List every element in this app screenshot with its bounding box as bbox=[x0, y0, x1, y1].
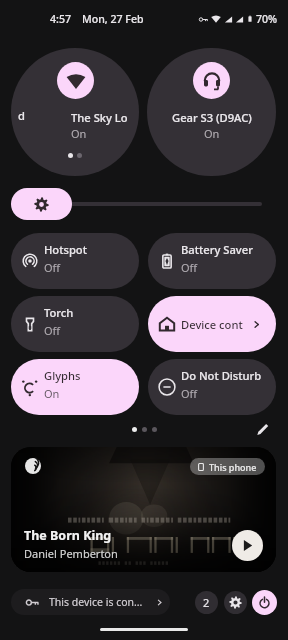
staticText: Do Not Disturb bbox=[181, 371, 262, 383]
staticText: 4:57 bbox=[50, 12, 72, 26]
button[interactable]: Hotspot bbox=[11, 233, 139, 289]
staticText: Gear S3 (D9AC) bbox=[172, 110, 252, 125]
button[interactable]: Device controls bbox=[148, 296, 276, 352]
button[interactable]: Power bbox=[252, 590, 277, 615]
staticText: 2 bbox=[203, 595, 210, 610]
staticText: The Sky Lo bbox=[71, 110, 128, 125]
staticText: On bbox=[71, 126, 87, 141]
staticText: This device is con… bbox=[49, 595, 143, 609]
staticText: Off bbox=[44, 323, 61, 338]
button[interactable]: Brightness bbox=[11, 188, 72, 220]
staticText: Battery Saver bbox=[181, 245, 253, 257]
button[interactable]: d bbox=[11, 48, 139, 176]
button[interactable]: This device is con… bbox=[11, 589, 170, 615]
button[interactable]: Glyphs bbox=[11, 359, 139, 415]
staticText: Mon, 27 Feb bbox=[82, 12, 144, 26]
button[interactable]: This phone bbox=[11, 447, 276, 572]
staticText: 70% bbox=[256, 12, 278, 26]
staticText: Off bbox=[44, 260, 61, 275]
staticText: Off bbox=[181, 386, 198, 401]
button[interactable]: Play bbox=[232, 530, 263, 561]
button[interactable]: Switch user bbox=[195, 591, 218, 614]
button[interactable]: Torch bbox=[11, 296, 139, 352]
staticText: Hotspot bbox=[44, 245, 87, 257]
button[interactable]: Settings bbox=[224, 591, 247, 614]
button[interactable]: Gear S3 (D9AC) bbox=[147, 48, 276, 176]
staticText: The Born King bbox=[24, 527, 112, 544]
button[interactable]: Do Not Disturb bbox=[148, 359, 276, 415]
staticText: Torch bbox=[44, 308, 74, 320]
staticText: Daniel Pemberton bbox=[24, 546, 118, 561]
button[interactable]: Battery Saver bbox=[148, 233, 276, 289]
staticText: Off bbox=[181, 260, 198, 275]
staticText: d bbox=[18, 108, 25, 123]
staticText: This phone bbox=[209, 461, 257, 473]
button[interactable]: Edit tiles bbox=[252, 419, 272, 439]
staticText: Glyphs bbox=[44, 371, 81, 383]
staticText: On bbox=[44, 386, 60, 401]
staticText: On bbox=[204, 126, 220, 141]
button[interactable]: This phone bbox=[190, 458, 265, 475]
staticText: Device controls bbox=[181, 317, 243, 332]
